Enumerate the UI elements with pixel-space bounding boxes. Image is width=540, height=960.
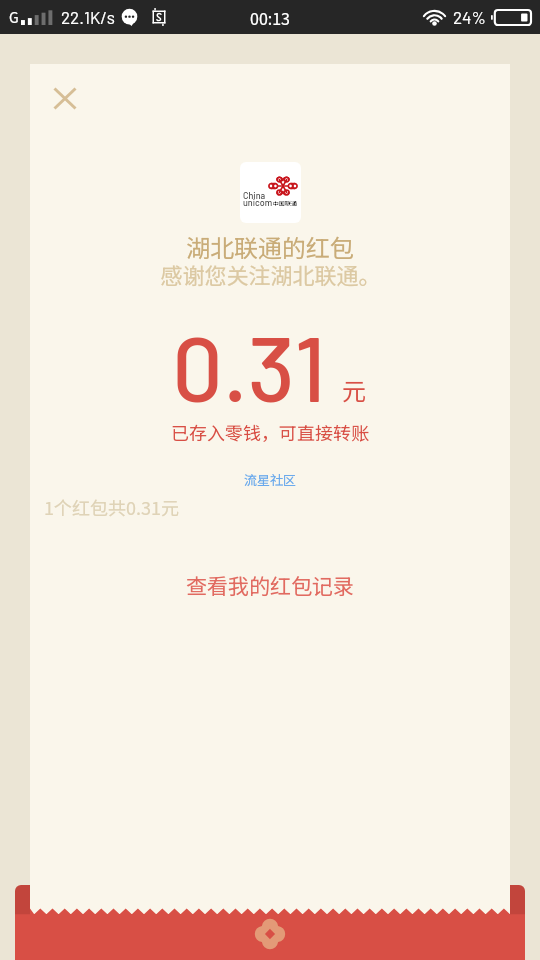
staticText: 流星社区 bbox=[244, 470, 297, 489]
staticText: 感谢您关注湖北联通。 bbox=[160, 258, 381, 290]
button[interactable]: 流星社区 bbox=[240, 468, 301, 491]
staticText: 22.1K/s bbox=[61, 7, 115, 27]
staticText: 元 bbox=[342, 372, 366, 407]
button[interactable]: Close bbox=[30, 64, 99, 132]
staticText: 00:13 bbox=[250, 6, 290, 29]
staticText: unicom bbox=[243, 197, 273, 208]
staticText: G bbox=[9, 7, 19, 27]
staticText: China bbox=[243, 190, 266, 201]
staticText: 湖北联通的红包 bbox=[186, 229, 354, 264]
staticText: 1个红包共0.31元 bbox=[44, 494, 179, 520]
staticText: 查看我的红包记录 bbox=[186, 570, 354, 600]
staticText: 0.31 bbox=[172, 312, 326, 420]
button[interactable]: 查看我的红包记录 bbox=[30, 560, 510, 610]
staticText: 中国联通 bbox=[273, 199, 298, 208]
staticText: 24% bbox=[453, 7, 486, 27]
staticText: 已存入零钱，可直接转账 bbox=[171, 419, 369, 445]
